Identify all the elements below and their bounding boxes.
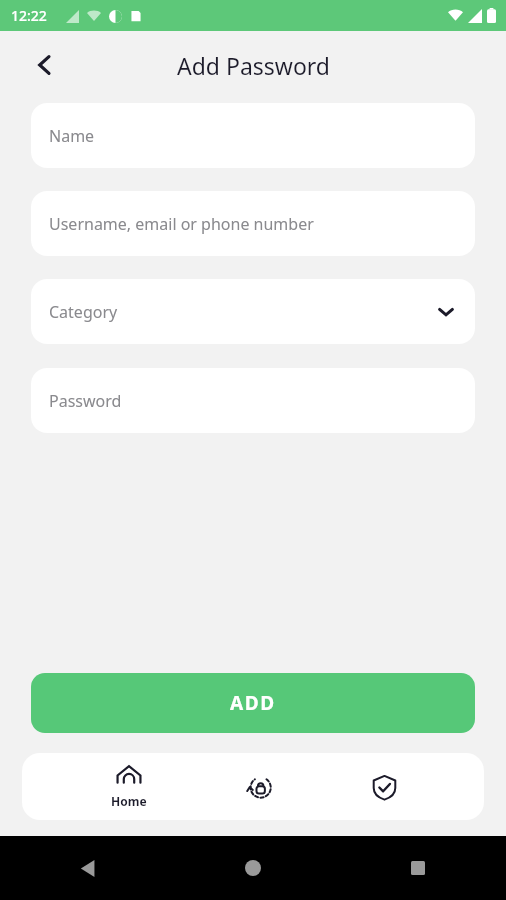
button[interactable]: Password generator [235,763,283,811]
staticText: ADD [230,690,276,716]
button[interactable]: Category [31,279,475,344]
button[interactable]: Home [99,760,159,813]
staticText: Category [49,301,118,323]
staticText: Home [111,793,147,809]
staticText: Add Password [177,50,330,81]
button[interactable]: Home [235,850,271,886]
staticText: Username, email or phone number [49,213,314,235]
button[interactable]: Username, email or phone number [31,191,475,256]
button[interactable]: Security check [360,763,408,811]
button[interactable]: Password [31,368,475,433]
button[interactable]: Back [70,850,106,886]
staticText: Name [49,125,95,147]
button[interactable]: Back [22,42,68,88]
button[interactable]: ADD [31,673,475,733]
button[interactable]: Recents [400,850,436,886]
staticText: 12:22 [11,6,47,25]
button[interactable]: Name [31,103,475,168]
staticText: Password [49,390,122,412]
